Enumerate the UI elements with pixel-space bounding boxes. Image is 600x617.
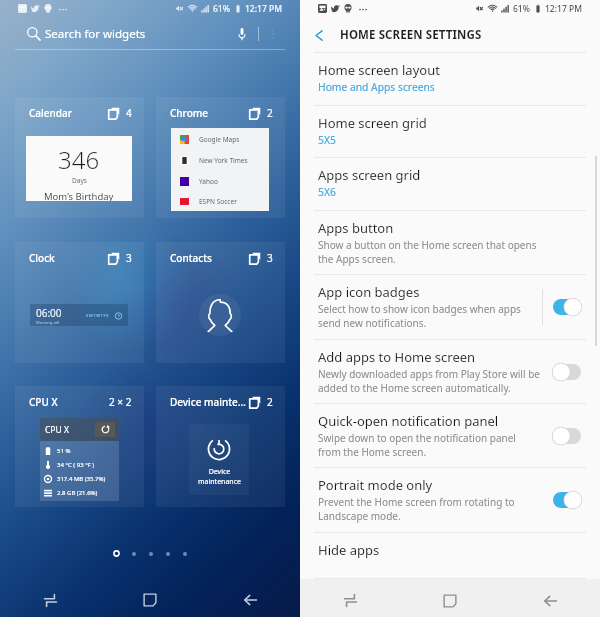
button[interactable]: App icon badges toggle [543, 275, 600, 339]
button[interactable]: App icon badges [300, 275, 600, 339]
button[interactable]: Chrome [156, 97, 285, 218]
staticText: 51 % [57, 447, 71, 455]
staticText: Home and Apps screens [318, 80, 435, 94]
staticText: SMTWTFS [86, 313, 110, 318]
button[interactable]: Recents [0, 583, 100, 617]
staticText: HOME SCREEN SETTINGS [340, 27, 482, 43]
staticText: Home screen layout [318, 61, 440, 79]
button[interactable]: Home screen grid [300, 106, 600, 157]
staticText: Device mainte… [170, 395, 246, 409]
staticText: Swipe down to open the notification pane… [318, 431, 516, 459]
staticText: Clock [29, 251, 55, 265]
staticText: 12:17 PM [545, 3, 582, 15]
staticText: Show a button on the Home screen that op… [318, 238, 537, 266]
button[interactable]: Portrait mode only toggle [543, 468, 600, 532]
staticText: 2 [267, 395, 273, 409]
staticText: Prevent the Home screen from rotating to… [318, 495, 515, 523]
staticText: Days [72, 176, 87, 185]
staticText: Select how to show icon badges when apps… [318, 302, 521, 330]
staticText: 5X6 [318, 185, 336, 199]
button[interactable]: Add apps to Home screen [300, 340, 600, 403]
button[interactable]: Contacts [156, 242, 285, 363]
staticText: Device maintenance [198, 467, 241, 487]
button[interactable]: Back [200, 583, 300, 617]
staticText: 4 [126, 106, 132, 120]
staticText: 3 [126, 251, 132, 265]
staticText: 5X5 [318, 133, 336, 147]
staticText: Quick-open notification panel [318, 412, 499, 430]
staticText: 06:00 [36, 306, 62, 320]
staticText: 2 × 2 [109, 395, 132, 409]
staticText: Newly downloaded apps from Play Store wi… [318, 367, 540, 395]
staticText: Add apps to Home screen [318, 348, 476, 366]
staticText: 317.4 MB (35.7%) [57, 475, 106, 483]
button[interactable]: Clock [15, 242, 144, 363]
button[interactable]: Voice search [230, 22, 254, 46]
button[interactable]: CPU X [15, 386, 144, 507]
staticText: Apps button [318, 219, 394, 237]
staticText: Chrome [170, 106, 208, 120]
button[interactable]: Home screen layout [300, 53, 600, 105]
button[interactable]: Search for widgets [0, 18, 300, 49]
staticText: Home screen grid [318, 114, 427, 132]
button[interactable]: Portrait mode only [300, 468, 600, 532]
staticText: ESPN Soccer [199, 197, 237, 206]
staticText: CPU X [29, 395, 58, 409]
staticText: 61% [513, 3, 530, 15]
button[interactable]: Back [500, 584, 600, 617]
button[interactable]: Quick-open notification panel [300, 404, 600, 467]
button[interactable]: Apps button [300, 211, 600, 274]
staticText: App icon badges [318, 283, 420, 301]
staticText: Contacts [170, 251, 212, 265]
staticText: Hide apps [318, 541, 380, 559]
staticText: Apps screen grid [318, 166, 421, 184]
staticText: Google Maps [199, 135, 240, 144]
staticText: New York Times [199, 156, 248, 165]
button[interactable]: Hide apps [300, 533, 600, 578]
staticText: 346 [58, 143, 100, 176]
staticText: 2 [267, 106, 273, 120]
staticText: Search for widgets [45, 26, 146, 42]
staticText: 34 °C ( 93 °F ) [57, 461, 95, 469]
staticText: Yahoo [199, 177, 218, 186]
staticText: 61% [213, 3, 230, 15]
staticText: Mom’s Birthday [44, 190, 114, 201]
button[interactable]: Add apps to Home screen toggle [543, 340, 600, 403]
button[interactable]: Navigate up [300, 18, 340, 52]
staticText: Calendar [29, 106, 72, 120]
staticText: 2.8 GB (21.6%) [57, 489, 98, 497]
button[interactable]: Recents [300, 584, 400, 617]
staticText: Portrait mode only [318, 476, 433, 494]
button[interactable]: Device mainte… [156, 386, 285, 507]
button[interactable]: Calendar [15, 97, 144, 218]
staticText: 12:17 PM [245, 3, 282, 15]
button[interactable]: Home [100, 583, 200, 617]
staticText: CPU X [45, 424, 69, 436]
button[interactable]: Home [400, 584, 500, 617]
staticText: 3 [267, 251, 273, 265]
staticText: Morning call [36, 320, 60, 325]
button[interactable]: Apps screen grid [300, 158, 600, 210]
button[interactable]: More options [263, 24, 283, 44]
button[interactable]: Quick-open notification panel toggle [543, 404, 600, 467]
